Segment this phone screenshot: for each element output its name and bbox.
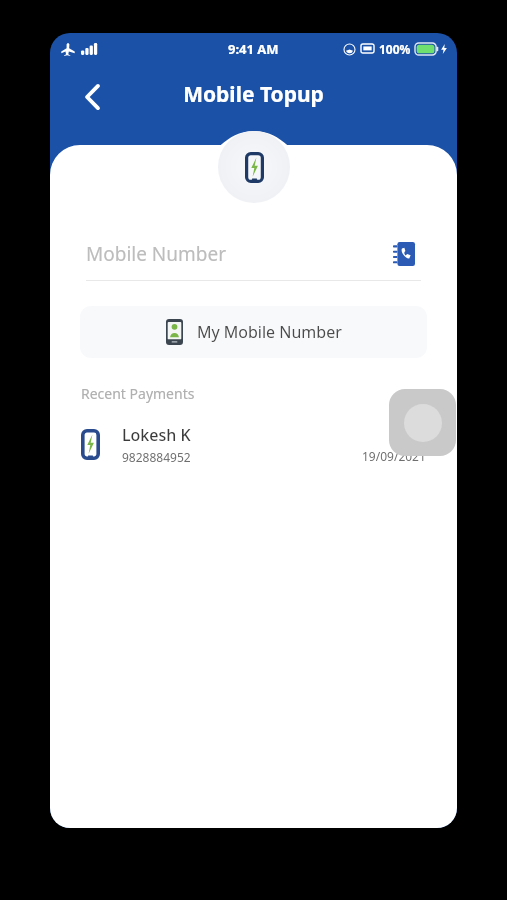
- staticText: 9828884952: [122, 449, 191, 465]
- button[interactable]: Contacts: [387, 237, 421, 271]
- staticText: ₹ 10: [396, 424, 426, 444]
- staticText: Recent Payments: [81, 384, 195, 403]
- button[interactable]: Mobile Number: [86, 232, 421, 276]
- staticText: My Mobile Number: [197, 321, 342, 343]
- staticText: Lokesh K: [122, 424, 191, 446]
- staticText: Mobile Topup: [183, 80, 324, 109]
- button[interactable]: Overlay: [389, 389, 456, 456]
- button[interactable]: Back: [70, 75, 114, 119]
- staticText: 19/09/2021: [362, 448, 426, 464]
- staticText: Mobile Number: [86, 241, 387, 267]
- staticText: 9:41 AM: [228, 40, 279, 58]
- button[interactable]: Lokesh K: [81, 421, 426, 467]
- button[interactable]: My Mobile Number: [80, 306, 427, 358]
- staticText: 100%: [379, 41, 411, 57]
